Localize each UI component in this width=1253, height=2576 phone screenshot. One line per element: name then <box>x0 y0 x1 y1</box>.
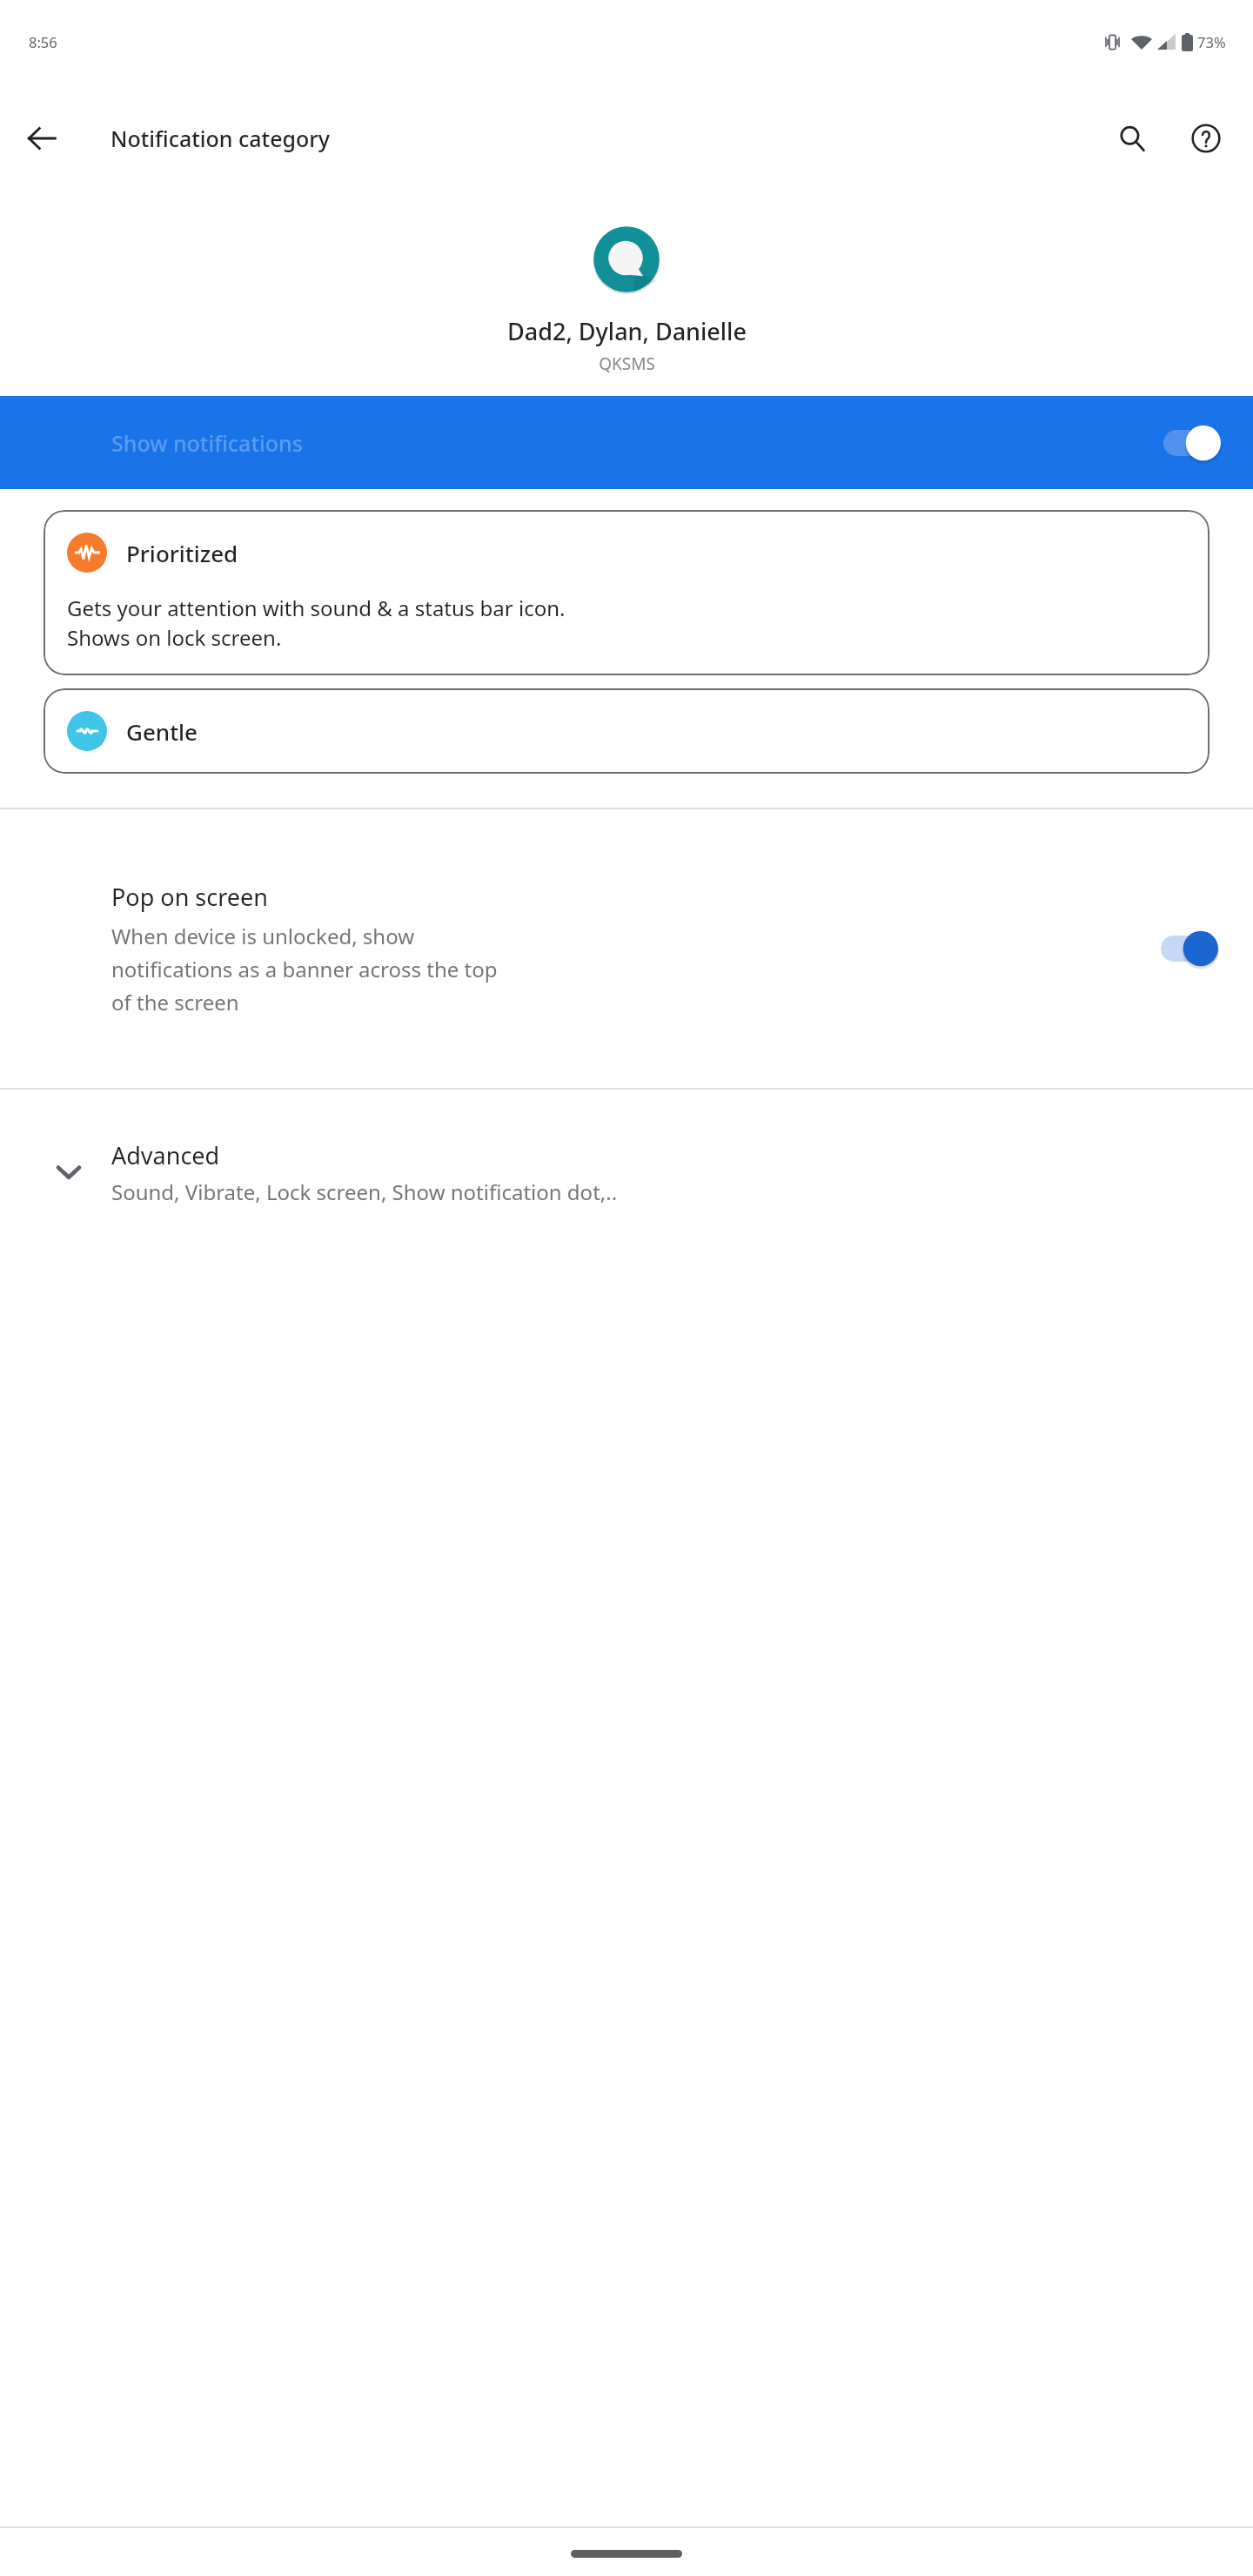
staticText: Notification category <box>111 124 331 153</box>
button[interactable]: Gentle <box>44 688 1209 774</box>
button[interactable]: Help <box>1176 109 1236 168</box>
button[interactable]: Advanced <box>0 1090 1253 1255</box>
staticText: 73% <box>1197 32 1226 51</box>
button[interactable]: Pop on screen <box>0 809 1253 1088</box>
button[interactable]: Back <box>12 109 71 168</box>
staticText: 8:56 <box>29 32 57 51</box>
button[interactable]: Prioritized <box>44 510 1209 675</box>
staticText: Prioritized <box>126 538 238 568</box>
staticText: When device is unlocked, show notificati… <box>111 922 498 1016</box>
button[interactable]: Search <box>1102 109 1162 168</box>
staticText: QKSMS <box>599 352 655 375</box>
button[interactable]: Show notifications <box>0 396 1253 489</box>
staticText: Gets your attention with sound & a statu… <box>67 594 566 653</box>
staticText: Dad2, Dylan, Danielle <box>507 315 747 347</box>
staticText: Sound, Vibrate, Lock screen, Show notifi… <box>111 1177 618 1206</box>
staticText: Advanced <box>111 1139 220 1171</box>
staticText: Show notifications <box>111 428 303 458</box>
staticText: Gentle <box>126 716 198 747</box>
staticText: Pop on screen <box>111 881 268 913</box>
